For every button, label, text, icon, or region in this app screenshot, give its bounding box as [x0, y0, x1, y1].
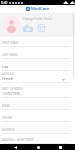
button[interactable]: EMAIL	[0, 98, 75, 110]
staticText: Change Profile Photo	[23, 17, 52, 21]
staticText: 8:30	[1, 1, 8, 5]
staticText: Female	[2, 76, 14, 81]
button[interactable]: Lisa	[0, 59, 75, 71]
staticText: ADDRESS / APARTMENT	[2, 138, 34, 142]
staticText: ADDRESS	[2, 128, 15, 132]
button[interactable]: Profile photo	[3, 16, 20, 33]
staticText: EMAIL	[2, 104, 11, 108]
button[interactable]: PHONE	[0, 110, 75, 122]
button[interactable]: GENDER	[0, 71, 75, 83]
staticText: PHONE	[2, 116, 12, 120]
staticText: 12/05/1990	[2, 91, 21, 96]
staticText: GENDER	[2, 72, 14, 76]
button[interactable]: LAST NAME	[0, 47, 75, 59]
button[interactable]: ADDRESS / APARTMENT	[0, 134, 75, 144]
staticText: Lisa	[2, 64, 9, 69]
button[interactable]: DATE OF BIRTH	[0, 83, 75, 98]
button[interactable]: Recent apps	[53, 144, 67, 150]
button[interactable]: FIRST NAME	[0, 37, 75, 47]
staticText: MedCare	[31, 6, 50, 12]
button[interactable]: ADDRESS	[0, 122, 75, 134]
staticText: LAST NAME	[2, 53, 18, 57]
button[interactable]: Take photo	[23, 24, 33, 32]
button[interactable]: Back	[8, 144, 22, 150]
staticText: FIRST NAME	[2, 41, 19, 45]
button[interactable]: Home	[31, 144, 45, 150]
staticText: DATE OF BIRTH	[2, 87, 23, 91]
button[interactable]: Choose from gallery	[37, 23, 45, 32]
